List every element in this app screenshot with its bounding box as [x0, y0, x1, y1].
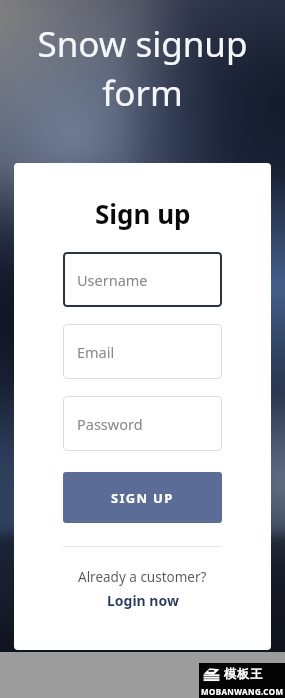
button[interactable]: Login now: [107, 591, 179, 610]
staticText: Username: [77, 270, 148, 290]
button[interactable]: Email: [63, 324, 222, 379]
staticText: Email: [77, 342, 115, 362]
other: mobanwang.com watermark: [199, 663, 285, 698]
button[interactable]: Username: [63, 252, 222, 307]
button[interactable]: Password: [63, 396, 222, 451]
staticText: Already a customer?: [78, 568, 207, 586]
button[interactable]: SIGN UP: [63, 472, 222, 523]
staticText: Sign up: [95, 196, 191, 231]
staticText: 模板王: [224, 666, 264, 681]
staticText: Login now: [107, 591, 179, 610]
staticText: Password: [77, 414, 143, 434]
staticText: Snow signup form: [10, 20, 275, 116]
staticText: MOBANWANG.COM: [201, 686, 284, 697]
staticText: SIGN UP: [111, 489, 174, 507]
